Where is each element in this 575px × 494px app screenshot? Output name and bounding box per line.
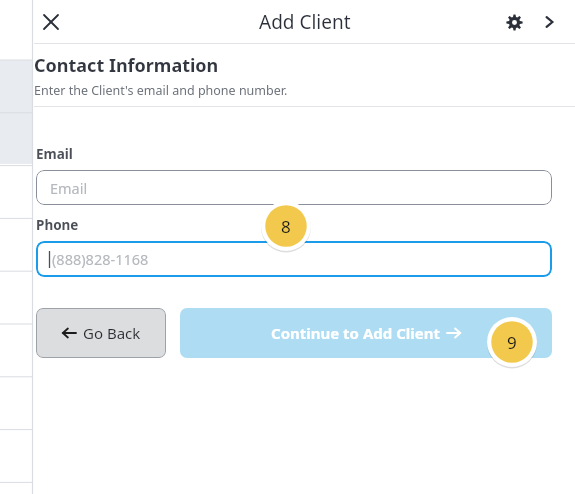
staticText: (888)828-1168: [52, 249, 149, 269]
button[interactable]: (888)828-1168: [36, 241, 552, 277]
staticText: 8: [281, 215, 291, 238]
staticText: Email: [50, 178, 88, 198]
button[interactable]: Close: [34, 5, 68, 39]
staticText: Email: [36, 145, 73, 163]
staticText: Phone: [36, 216, 79, 234]
staticText: Go Back: [83, 323, 141, 343]
staticText: Continue to Add Client: [271, 323, 440, 343]
button[interactable]: Continue to Add Client: [180, 308, 552, 358]
staticText: Enter the Client's email and phone numbe…: [34, 82, 288, 99]
button[interactable]: Go Back: [36, 308, 166, 358]
staticText: Add Client: [259, 9, 351, 35]
staticText: 9: [507, 331, 517, 354]
button[interactable]: Next: [532, 5, 566, 39]
button[interactable]: Email: [36, 170, 552, 205]
button[interactable]: Settings: [496, 4, 532, 40]
staticText: Contact Information: [34, 53, 219, 78]
